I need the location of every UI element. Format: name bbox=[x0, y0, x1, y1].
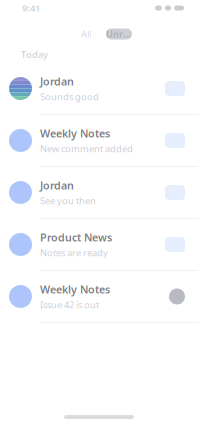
button[interactable]: Product News bbox=[0, 219, 198, 271]
staticText: 9:41 bbox=[22, 2, 40, 14]
button[interactable]: Weekly Notes bbox=[0, 115, 198, 167]
staticText: Product News bbox=[40, 230, 112, 244]
button[interactable]: Jordan bbox=[0, 63, 198, 115]
staticText: Sounds good bbox=[40, 90, 99, 103]
staticText: Today bbox=[21, 48, 48, 61]
staticText: New comment added bbox=[40, 142, 133, 155]
staticText: Jordan bbox=[40, 74, 74, 88]
staticText: Issue 42 is out bbox=[40, 298, 99, 311]
staticText: Notes are ready bbox=[40, 246, 108, 259]
button[interactable]: Unread bbox=[106, 28, 132, 39]
button[interactable]: All bbox=[78, 28, 94, 40]
staticText: Unread bbox=[106, 28, 132, 40]
staticText: Weekly Notes bbox=[40, 126, 110, 140]
staticText: Weekly Notes bbox=[40, 282, 110, 296]
staticText: All bbox=[81, 28, 91, 40]
button[interactable]: Jordan bbox=[0, 167, 198, 219]
button[interactable]: Weekly Notes bbox=[0, 271, 198, 323]
staticText: See you then bbox=[40, 194, 96, 207]
staticText: Jordan bbox=[40, 178, 74, 192]
